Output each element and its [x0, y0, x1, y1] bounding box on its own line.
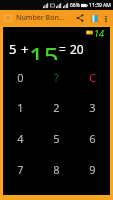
staticText: 14 — [94, 27, 104, 38]
staticText: 8 — [53, 162, 60, 177]
staticText: 2 — [53, 100, 60, 115]
button[interactable]: 4 — [3, 123, 38, 154]
staticText: 0 — [17, 70, 24, 85]
button[interactable]: 2 — [38, 92, 74, 123]
button[interactable]: 3 — [74, 92, 110, 123]
button[interactable]: 6 — [74, 123, 110, 154]
staticText: 9 — [89, 162, 96, 177]
button[interactable]: 0 — [3, 62, 38, 92]
button[interactable]: ? — [38, 62, 74, 92]
staticText: 6 — [89, 131, 96, 146]
button[interactable]: Store — [88, 12, 100, 24]
staticText: 5 — [9, 40, 17, 58]
button[interactable]: More options — [101, 14, 110, 23]
button[interactable]: 8 — [38, 154, 74, 185]
staticText: 3 — [89, 100, 96, 115]
staticText: 11:39 AM — [89, 2, 111, 9]
staticText: 66% — [70, 2, 80, 9]
staticText: 5 — [53, 131, 60, 146]
button[interactable]: Share — [74, 12, 86, 24]
staticText: C — [89, 70, 96, 85]
button[interactable]: 1 — [3, 92, 38, 123]
staticText: = — [59, 41, 66, 57]
staticText: 1 — [17, 100, 24, 115]
staticText: + — [21, 40, 29, 58]
staticText: 7 — [17, 162, 24, 177]
button[interactable]: 9 — [74, 154, 110, 185]
staticText: Number Bon... — [16, 13, 74, 23]
staticText: 15 — [29, 38, 59, 60]
button[interactable]: 5 — [38, 123, 74, 154]
button[interactable]: Menu — [3, 13, 13, 23]
button[interactable]: C — [74, 62, 110, 92]
staticText: 20 — [70, 41, 84, 57]
staticText: ? — [54, 70, 59, 85]
staticText: 4 — [17, 131, 24, 146]
button[interactable]: 7 — [3, 154, 38, 185]
